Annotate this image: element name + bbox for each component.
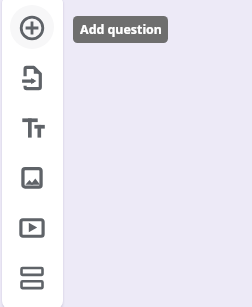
button[interactable]: Add image — [10, 156, 54, 200]
button[interactable]: Add question — [73, 16, 168, 43]
button[interactable]: Add question — [10, 6, 54, 50]
button[interactable]: Add section — [10, 256, 54, 300]
button[interactable]: Add title and description — [10, 106, 54, 150]
button[interactable]: Import questions — [10, 56, 54, 100]
button[interactable]: Add video — [10, 206, 54, 250]
staticText: Add question — [80, 21, 162, 38]
